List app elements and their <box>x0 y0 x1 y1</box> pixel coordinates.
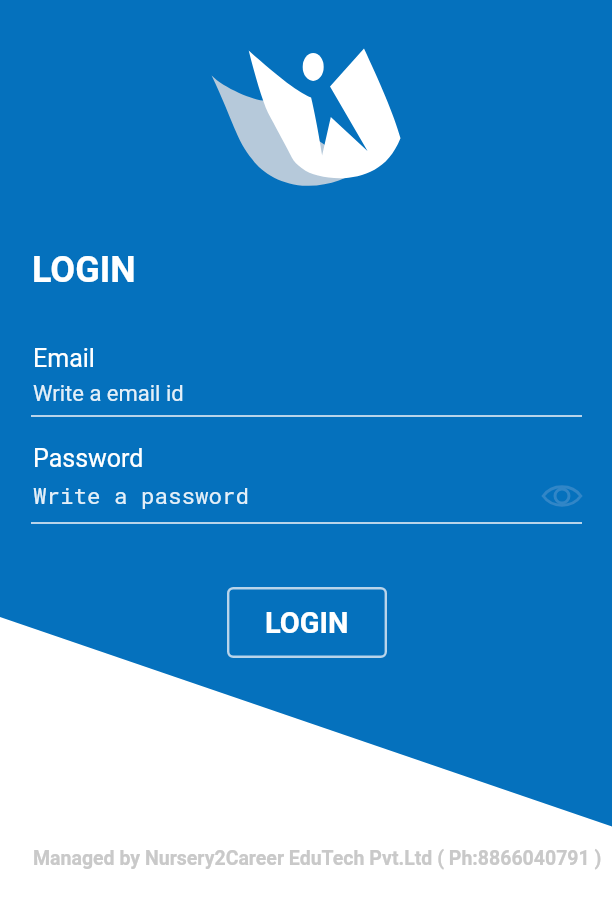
staticText: Password <box>33 444 144 473</box>
button[interactable]: Show password <box>542 482 582 510</box>
staticText: Write a email id <box>33 381 184 407</box>
staticText: Write a password <box>33 480 250 510</box>
staticText: LOGIN <box>265 606 349 640</box>
button[interactable]: LOGIN <box>227 587 387 658</box>
staticText: LOGIN <box>32 249 136 291</box>
staticText: Email <box>33 344 95 373</box>
staticText: Managed by Nursery2Career EduTech Pvt.Lt… <box>33 847 602 870</box>
